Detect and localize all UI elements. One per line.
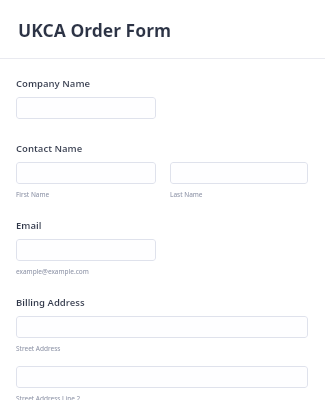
button[interactable]: Street Address field xyxy=(16,316,308,338)
staticText: First Name xyxy=(16,190,50,199)
staticText: Last Name xyxy=(170,190,203,199)
staticText: Email xyxy=(16,219,42,232)
button[interactable]: Last Name field xyxy=(170,162,308,184)
button[interactable]: Street Address Line 2 field xyxy=(16,366,308,388)
staticText: example@example.com xyxy=(16,267,89,276)
button[interactable]: Email field xyxy=(16,239,156,261)
staticText: UKCA Order Form xyxy=(18,18,172,42)
staticText: Street Address Line 2 xyxy=(16,394,81,400)
staticText: Billing Address xyxy=(16,296,85,309)
button[interactable]: First Name field xyxy=(16,162,156,184)
staticText: Street Address xyxy=(16,344,61,353)
staticText: Company Name xyxy=(16,77,91,90)
button[interactable]: Company Name field xyxy=(16,97,156,119)
staticText: Contact Name xyxy=(16,142,83,155)
